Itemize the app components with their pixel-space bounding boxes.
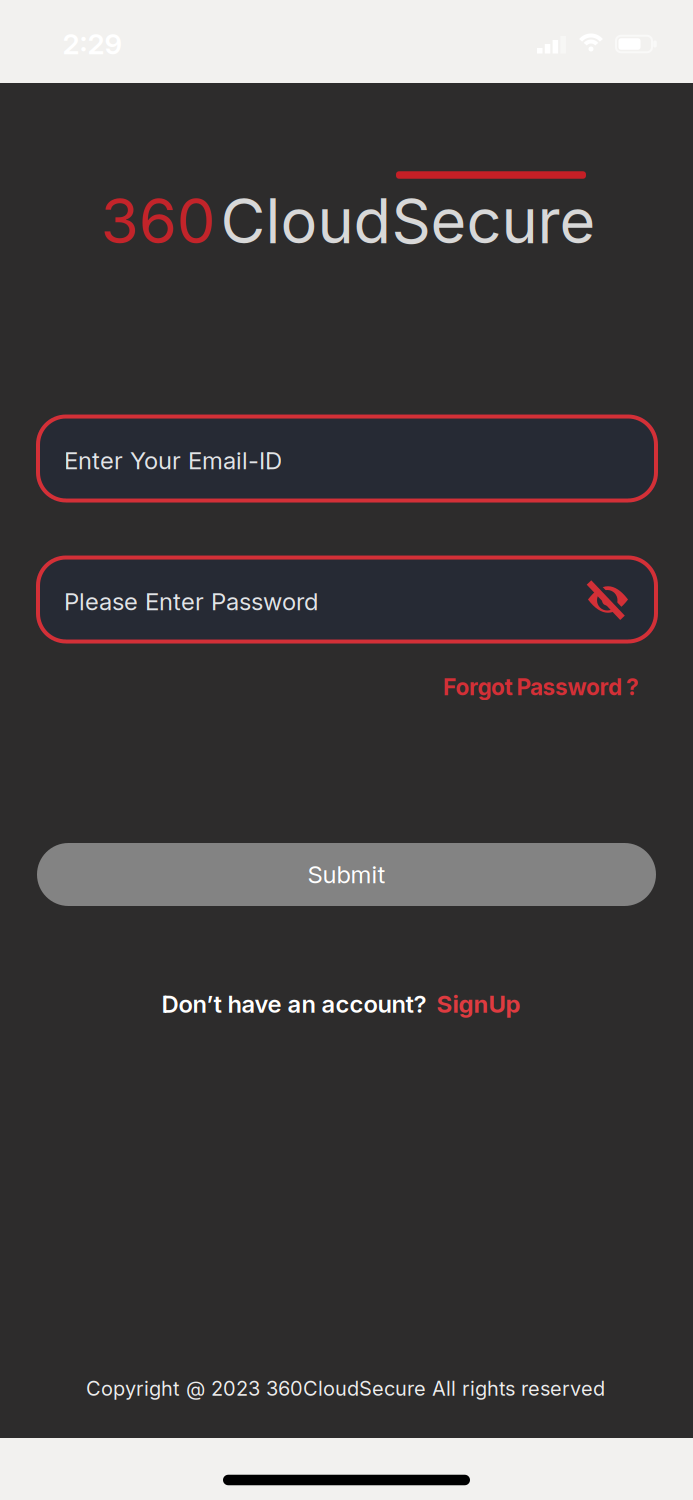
button[interactable]: Enter Your Email-ID (36, 414, 658, 502)
staticText: 2:29 (62, 27, 122, 60)
staticText: Enter Your Email-ID (64, 446, 282, 475)
button[interactable]: SignUp (436, 990, 520, 1018)
staticText: Forgot Password ? (443, 674, 639, 700)
staticText: Please Enter Password (64, 587, 318, 616)
button[interactable]: Submit (37, 843, 656, 906)
button[interactable]: Show password (588, 581, 628, 618)
staticText: SignUp (436, 990, 520, 1018)
button[interactable]: Forgot Password ? (443, 674, 639, 700)
staticText: Submit (307, 860, 385, 889)
staticText: CloudSecure (220, 185, 595, 257)
staticText: Don’t have an account? (161, 990, 426, 1018)
staticText: 360 (100, 185, 215, 257)
staticText: Copyright @ 2023 360CloudSecure All righ… (86, 1377, 605, 1400)
button[interactable]: Please Enter Password (36, 555, 658, 643)
